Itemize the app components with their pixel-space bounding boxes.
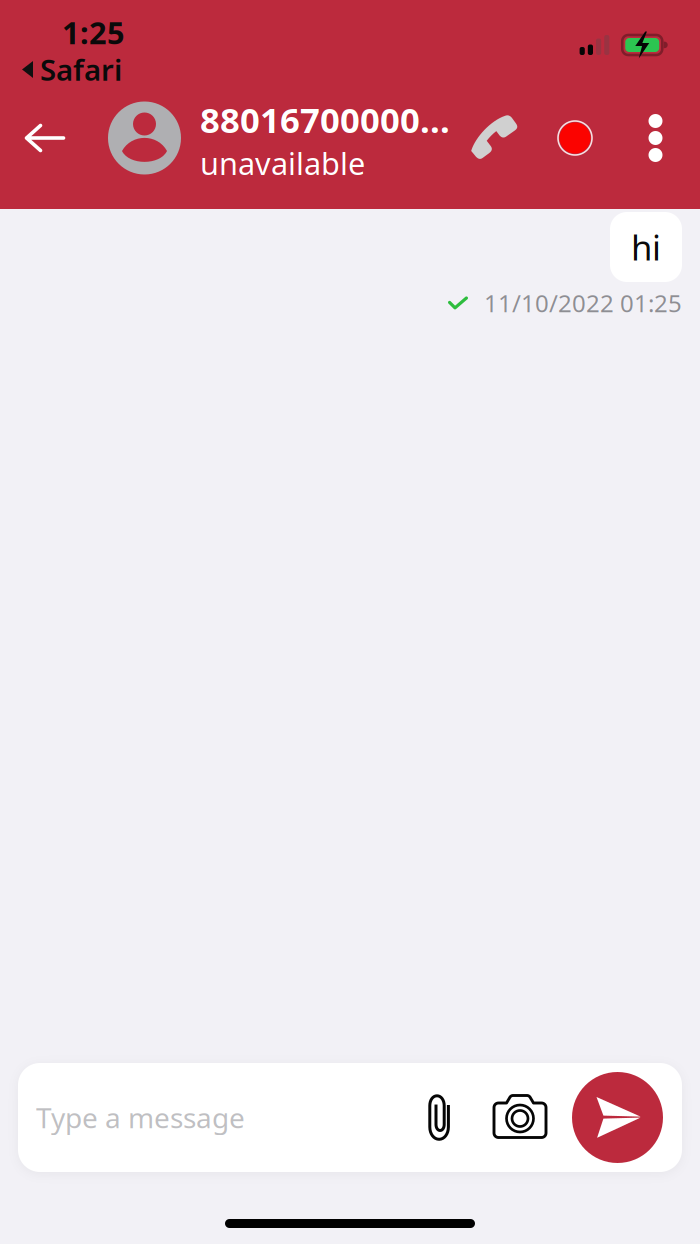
button[interactable]: Back to Safari	[0, 0, 122, 89]
button[interactable]: Camera	[487, 1063, 553, 1172]
button[interactable]: Message input field	[18, 1063, 392, 1172]
staticText: unavailable	[200, 143, 365, 183]
staticText: Type a message	[36, 1099, 245, 1136]
staticText: 88016700000...	[200, 97, 450, 143]
button[interactable]: Call	[464, 92, 524, 184]
button[interactable]: Send	[553, 1063, 682, 1172]
staticText: 11/10/2022 01:25	[484, 287, 682, 319]
staticText: 1:25	[62, 12, 125, 53]
staticText: hi	[631, 224, 661, 270]
staticText: Safari	[40, 50, 122, 89]
button[interactable]: Back	[0, 92, 108, 184]
button[interactable]: Record	[524, 92, 626, 184]
button[interactable]: Message: hi	[610, 212, 682, 282]
button[interactable]: Attach file	[392, 1063, 487, 1172]
button[interactable]: Contact info	[108, 92, 450, 184]
button[interactable]: More options	[626, 92, 685, 184]
